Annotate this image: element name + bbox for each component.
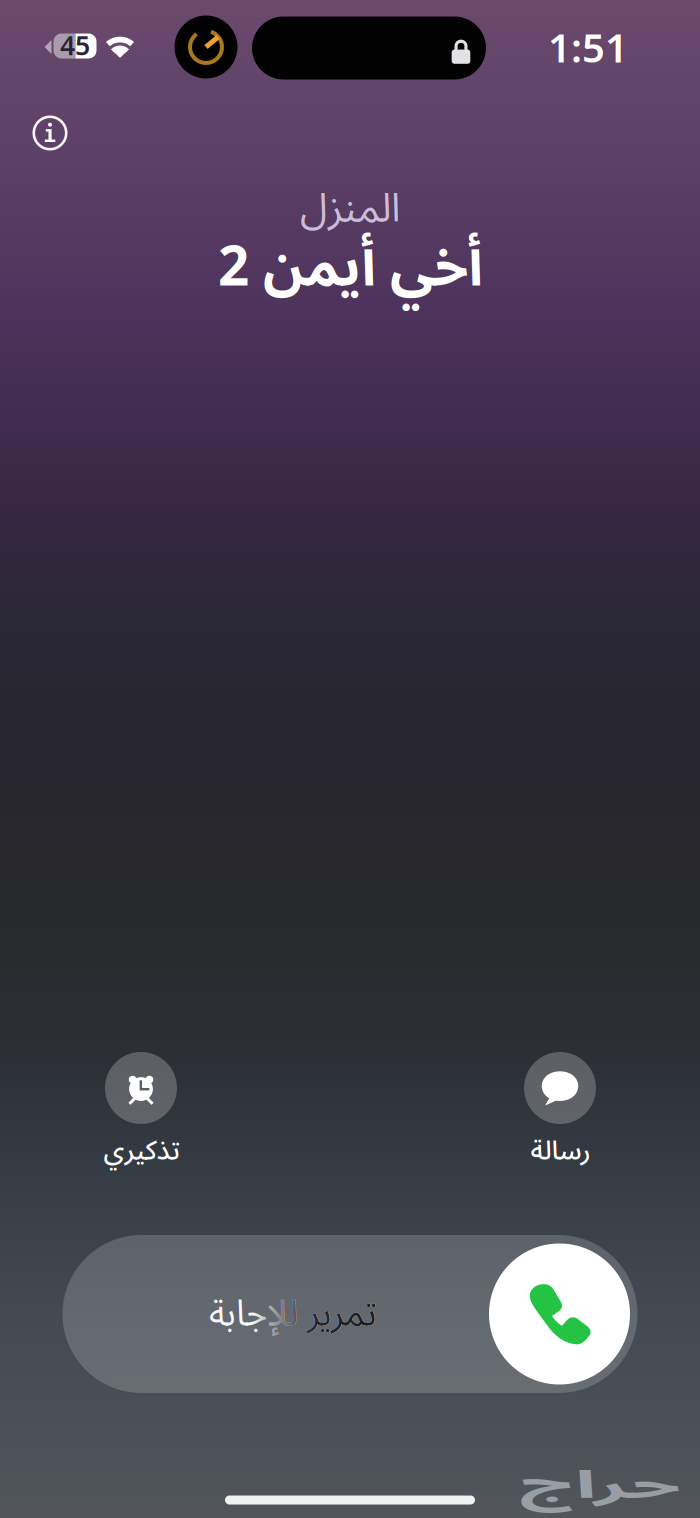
staticText: 45 [60,27,90,63]
button[interactable]: Caller info [22,105,78,161]
button[interactable]: Remind Me [41,1050,241,1174]
staticText: أخي أيمن 2 [217,210,482,326]
button[interactable]: Message [460,1050,660,1174]
button[interactable]: Slide to answer [62,1235,637,1393]
staticText: تذكيري [103,1123,179,1179]
staticText: 1:51 [548,20,628,73]
staticText: حراج [538,1421,662,1518]
staticText: رسالة [530,1123,590,1179]
staticText: تمرير للإجابة [208,1276,376,1352]
staticText: المنزل [299,167,400,251]
staticText: تمرير للإجابة [208,1276,376,1352]
